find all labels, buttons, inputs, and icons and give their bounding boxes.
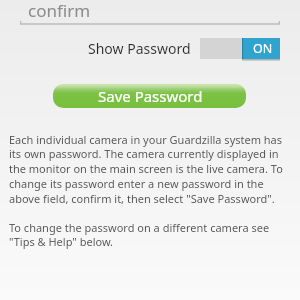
staticText: ON (253, 40, 273, 57)
staticText: Save Password (98, 86, 203, 106)
button[interactable]: Confirm password field (20, 0, 280, 25)
staticText: Each individual camera in your Guardzill… (9, 132, 293, 207)
staticText: confirm (28, 0, 91, 22)
staticText: Show Password (88, 39, 191, 58)
button[interactable]: Show password switch, on (200, 38, 280, 61)
staticText: To change the password on a different ca… (9, 220, 293, 250)
button[interactable]: Save Password (53, 84, 246, 108)
